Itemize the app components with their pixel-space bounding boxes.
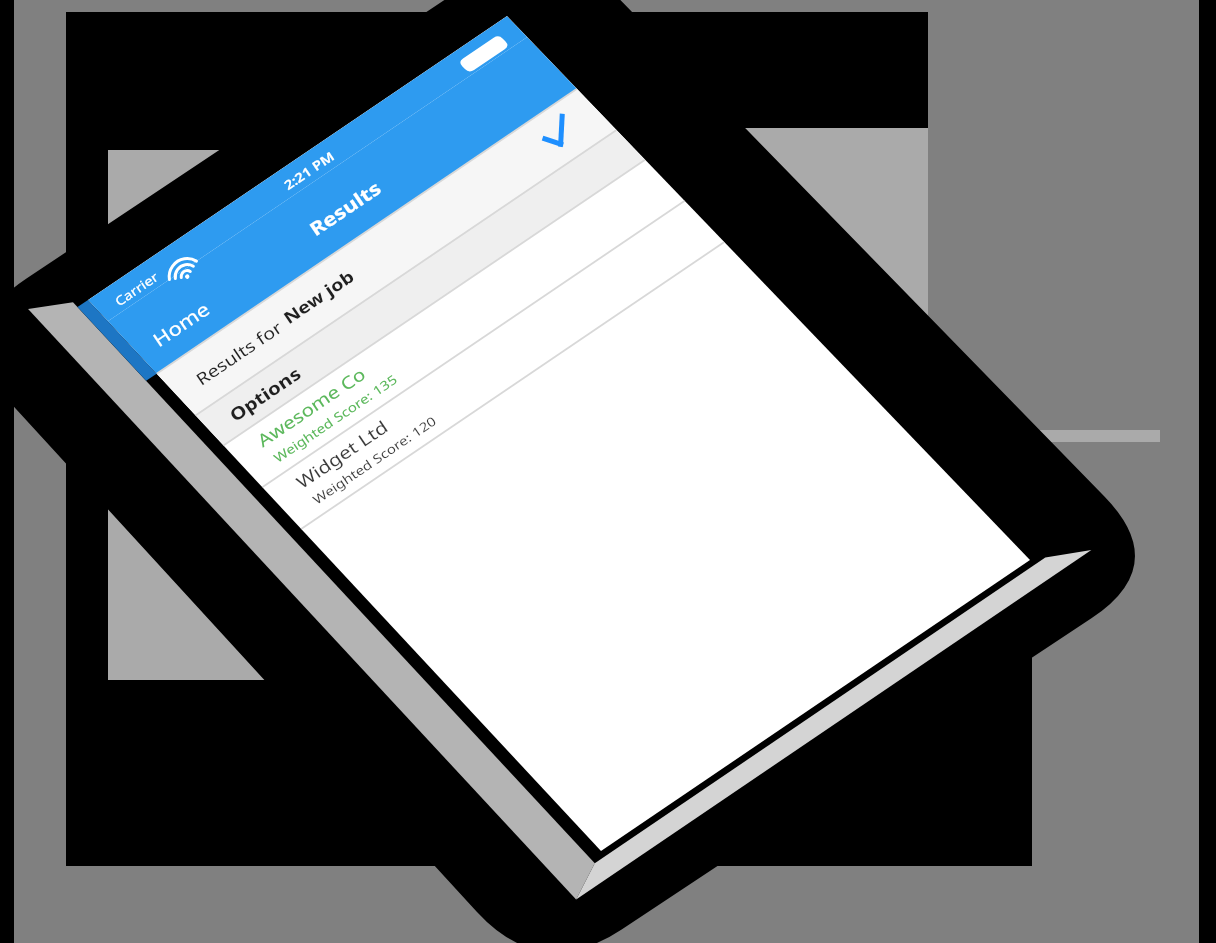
button[interactable]: Home, back — [70, 165, 190, 235]
button[interactable]: Confirm — [615, 140, 695, 200]
button[interactable]: Awesome Co, Weighted Score 135 — [255, 255, 575, 335]
button[interactable]: Widget Ltd, Weighted Score 120 — [295, 335, 615, 415]
